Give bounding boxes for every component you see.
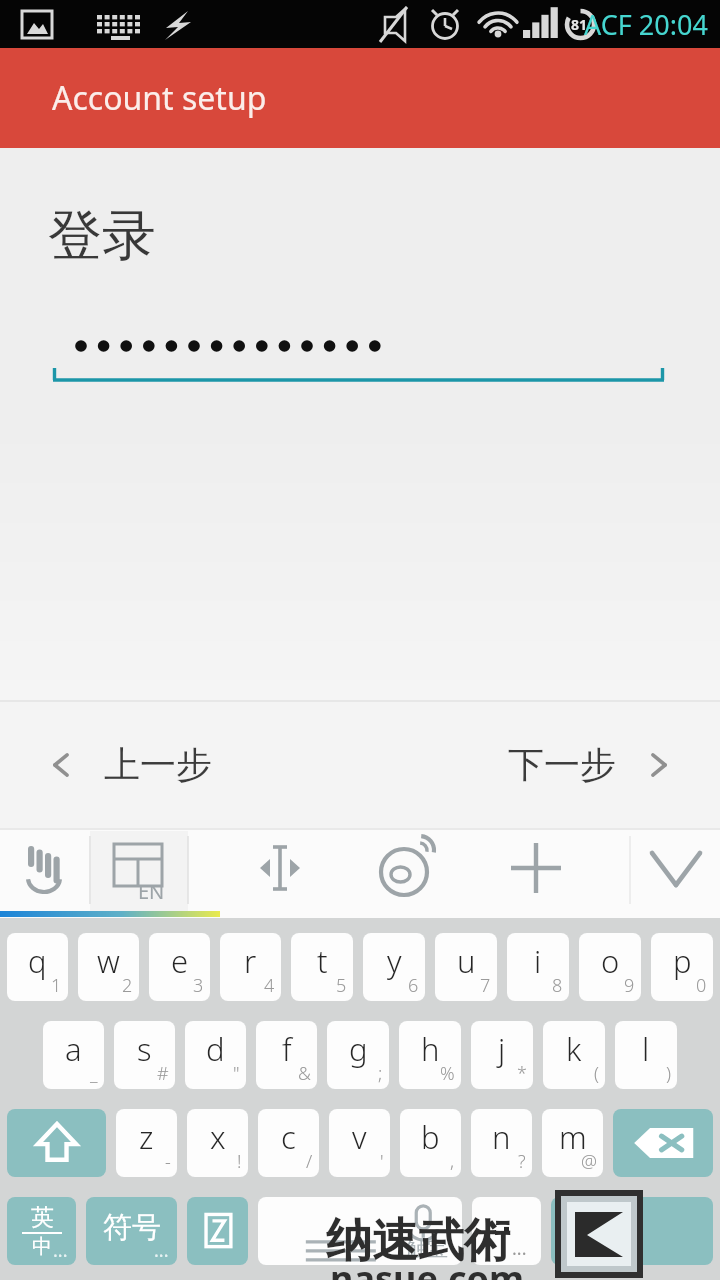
staticText: h xyxy=(421,1028,440,1070)
staticText: 英 xyxy=(31,1203,54,1232)
button[interactable]: m xyxy=(542,1109,603,1177)
staticText: 81 xyxy=(571,15,588,34)
staticText: ; xyxy=(378,1061,383,1086)
button[interactable]: y xyxy=(363,933,425,1001)
button[interactable]: e xyxy=(149,933,210,1001)
staticText: 5 xyxy=(336,973,347,998)
button[interactable]: k xyxy=(543,1021,605,1089)
staticText: - xyxy=(165,1149,171,1174)
button[interactable]: Handwriting xyxy=(10,828,82,908)
staticText: 中 xyxy=(32,1234,52,1259)
button[interactable]: Account setup xyxy=(0,48,720,148)
button[interactable]: d xyxy=(185,1021,246,1089)
staticText: g xyxy=(349,1028,368,1070)
button[interactable]: u xyxy=(435,933,497,1001)
staticText: ... xyxy=(53,1238,68,1263)
staticText: 4 xyxy=(264,973,275,998)
staticText: 符号 xyxy=(103,1209,161,1246)
staticText: " xyxy=(233,1061,240,1086)
button[interactable]: w xyxy=(78,933,139,1001)
staticText: 9 xyxy=(624,973,635,998)
staticText: t xyxy=(317,940,328,982)
button[interactable]: Space xyxy=(258,1197,462,1265)
staticText: j xyxy=(498,1028,506,1070)
staticText: 登录 xyxy=(48,202,156,270)
staticText: ... xyxy=(512,1236,527,1261)
staticText: 6 xyxy=(408,973,419,998)
staticText: m xyxy=(559,1116,587,1158)
button[interactable]: o xyxy=(579,933,641,1001)
button[interactable]: l xyxy=(615,1021,677,1089)
button[interactable]: Hide keyboard xyxy=(640,828,712,908)
button[interactable]: 英 xyxy=(7,1197,76,1265)
staticText: 3 xyxy=(193,973,204,998)
button[interactable]: Input layout EN xyxy=(104,828,176,908)
staticText: 1 xyxy=(51,973,62,998)
button[interactable]: v xyxy=(329,1109,390,1177)
button[interactable]: g xyxy=(327,1021,389,1089)
staticText: 7 xyxy=(480,973,491,998)
button[interactable]: q xyxy=(7,933,68,1001)
button[interactable]: Add xyxy=(500,828,572,908)
button[interactable]: n xyxy=(471,1109,532,1177)
staticText: 2 xyxy=(122,973,133,998)
staticText: / xyxy=(306,1149,313,1174)
button[interactable]: x xyxy=(187,1109,248,1177)
button[interactable]: p xyxy=(651,933,713,1001)
staticText: o xyxy=(601,940,620,982)
button[interactable]: Shift xyxy=(7,1109,106,1177)
staticText: ACF 20:04 xyxy=(584,6,708,43)
staticText: 8 xyxy=(552,973,563,998)
staticText: d xyxy=(206,1028,225,1070)
button[interactable]: Enter xyxy=(551,1197,612,1265)
button[interactable]: i xyxy=(507,933,569,1001)
button[interactable]: Period xyxy=(472,1197,541,1265)
staticText: % xyxy=(440,1061,455,1086)
button[interactable]: Move cursor xyxy=(244,828,316,908)
button[interactable]: a xyxy=(43,1021,104,1089)
staticText: r xyxy=(244,940,257,982)
staticText: Account setup xyxy=(52,76,267,120)
staticText: @ xyxy=(581,1149,597,1174)
staticText: _ xyxy=(90,1061,98,1086)
staticText: v xyxy=(352,1116,367,1158)
button[interactable]: Weibo xyxy=(372,828,444,908)
button[interactable]: s xyxy=(114,1021,175,1089)
button[interactable]: 下一步 xyxy=(500,728,684,801)
staticText: p xyxy=(673,940,692,982)
staticText: # xyxy=(157,1061,169,1086)
staticText: c xyxy=(281,1116,296,1158)
staticText: k xyxy=(566,1028,582,1070)
button[interactable]: z xyxy=(116,1109,177,1177)
staticText: 触宝 xyxy=(406,1236,448,1262)
staticText: EN xyxy=(138,878,165,905)
button[interactable] xyxy=(0,318,720,388)
staticText: e xyxy=(171,940,189,982)
staticText: b xyxy=(421,1116,440,1158)
button[interactable]: Emoji xyxy=(187,1197,248,1265)
button[interactable]: j xyxy=(471,1021,533,1089)
button[interactable]: c xyxy=(258,1109,319,1177)
button[interactable]: t xyxy=(291,933,353,1001)
staticText: 0 xyxy=(696,973,707,998)
staticText: y xyxy=(387,940,402,982)
staticText: f xyxy=(282,1028,292,1070)
staticText: z xyxy=(139,1116,154,1158)
staticText: n xyxy=(492,1116,511,1158)
button[interactable]: Backspace xyxy=(613,1109,713,1177)
button[interactable]: h xyxy=(399,1021,461,1089)
button[interactable]: r xyxy=(220,933,281,1001)
staticText: l xyxy=(642,1028,650,1070)
staticText: s xyxy=(137,1028,152,1070)
button[interactable]: b xyxy=(400,1109,461,1177)
staticText: & xyxy=(298,1061,311,1086)
staticText: ( xyxy=(594,1061,599,1086)
staticText: i xyxy=(534,940,542,982)
staticText: * xyxy=(517,1061,527,1086)
button[interactable]: f xyxy=(256,1021,317,1089)
staticText: 上一步 xyxy=(104,742,212,787)
button[interactable]: Send xyxy=(622,1197,713,1265)
button[interactable]: 符号 xyxy=(86,1197,177,1265)
staticText: ... xyxy=(154,1238,169,1263)
button[interactable]: 上一步 xyxy=(36,728,220,801)
